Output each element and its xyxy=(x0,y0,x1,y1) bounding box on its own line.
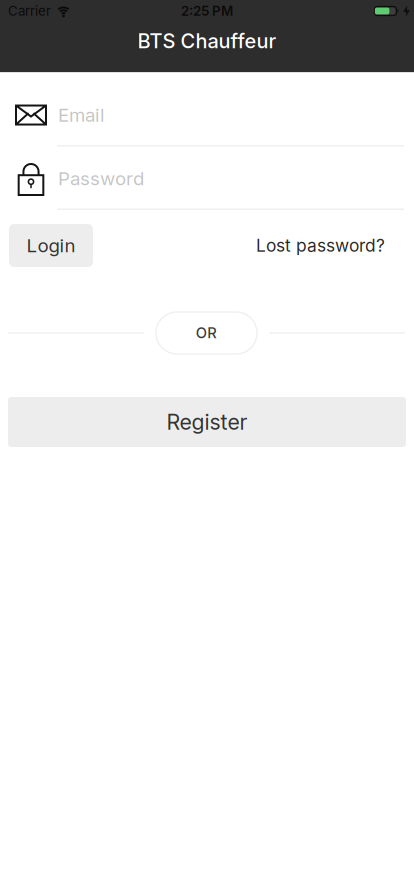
staticText: 2:25 PM xyxy=(181,3,233,19)
staticText: Login xyxy=(26,234,75,256)
staticText: Carrier xyxy=(8,3,51,19)
staticText: Register xyxy=(166,409,247,435)
staticText: BTS Chauffeur xyxy=(137,29,276,53)
button[interactable]: Lost password? xyxy=(256,235,385,256)
staticText: Email xyxy=(58,104,105,126)
button[interactable]: Email xyxy=(0,95,414,135)
button[interactable]: Register xyxy=(8,397,406,447)
staticText: OR xyxy=(196,324,217,342)
staticText: Lost password? xyxy=(256,235,385,256)
staticText: Password xyxy=(58,167,144,189)
button[interactable]: Password xyxy=(0,158,414,198)
button[interactable]: Login xyxy=(9,224,93,267)
